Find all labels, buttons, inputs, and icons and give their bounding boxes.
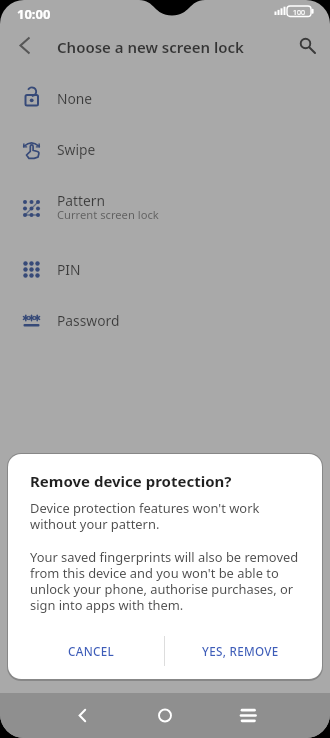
staticText: Your saved fingerprints will also be rem… bbox=[30, 548, 299, 613]
staticText: Choose a new screen lock bbox=[57, 37, 244, 57]
staticText: Device protection features won't work wi… bbox=[30, 499, 260, 532]
button[interactable]: YES, REMOVE bbox=[165, 631, 315, 671]
staticText: 10:00 bbox=[17, 5, 51, 23]
staticText: Pattern bbox=[57, 191, 106, 210]
staticText: Remove device protection? bbox=[30, 471, 232, 491]
button[interactable]: Password bbox=[0, 295, 330, 345]
button[interactable] bbox=[8, 32, 38, 62]
button[interactable]: Pattern bbox=[0, 175, 330, 241]
staticText: CANCEL bbox=[68, 643, 115, 659]
staticText: PIN bbox=[57, 260, 81, 279]
staticText: None bbox=[57, 89, 93, 108]
button[interactable] bbox=[62, 693, 102, 738]
button[interactable] bbox=[145, 693, 185, 738]
staticText: Swipe bbox=[57, 140, 96, 159]
button[interactable] bbox=[292, 30, 322, 60]
button[interactable]: PIN bbox=[0, 244, 330, 294]
button[interactable] bbox=[228, 693, 268, 738]
staticText: Password bbox=[57, 311, 120, 330]
staticText: Current screen lock bbox=[57, 207, 159, 222]
staticText: 100 bbox=[289, 8, 309, 18]
button[interactable]: Swipe bbox=[0, 124, 330, 174]
button[interactable]: None bbox=[0, 73, 330, 123]
button[interactable]: CANCEL bbox=[19, 631, 164, 671]
staticText: YES, REMOVE bbox=[202, 643, 279, 659]
